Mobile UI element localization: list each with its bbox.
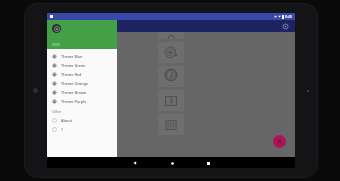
- button[interactable]: Back: [131, 159, 139, 167]
- button[interactable]: ALBUM: [158, 66, 184, 87]
- button[interactable]: Play: [273, 135, 286, 148]
- button[interactable]: ?: [47, 125, 117, 134]
- button[interactable]: Theme Purple: [47, 97, 117, 106]
- button[interactable]: Theme Brown: [47, 88, 117, 97]
- staticText: ?: [61, 127, 63, 132]
- staticText: Theme Orange: [61, 81, 89, 86]
- staticText: Theme Purple: [61, 99, 87, 104]
- staticText: ALBUM: [167, 83, 176, 86]
- button[interactable]: About: [47, 116, 117, 125]
- button[interactable]: Home: [168, 159, 176, 167]
- staticText: 8:40: [285, 14, 292, 19]
- staticText: Theme Brown: [61, 90, 87, 95]
- button[interactable]: [158, 32, 184, 39]
- button[interactable]: Theme Green: [47, 61, 117, 70]
- button[interactable]: [47, 20, 117, 49]
- staticText: Theme Red: [61, 72, 82, 77]
- button[interactable]: Settings: [281, 22, 290, 31]
- button[interactable]: Theme Red: [47, 70, 117, 79]
- button[interactable]: [158, 114, 184, 135]
- staticText: Theme Blue: [61, 54, 83, 59]
- button[interactable]: Theme Orange: [47, 79, 117, 88]
- staticText: About: [61, 118, 72, 123]
- staticText: Other: [52, 109, 62, 114]
- staticText: Theme Green: [61, 63, 86, 68]
- button[interactable]: [158, 42, 184, 63]
- button[interactable]: Theme Blue: [47, 52, 117, 61]
- button[interactable]: [158, 90, 184, 111]
- button[interactable]: Recents: [204, 159, 212, 167]
